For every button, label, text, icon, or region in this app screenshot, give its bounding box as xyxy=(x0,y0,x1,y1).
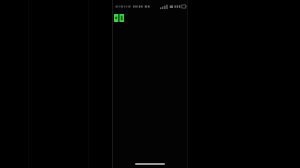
button[interactable]: Home xyxy=(135,163,165,165)
button[interactable]: App logo xyxy=(114,14,124,22)
